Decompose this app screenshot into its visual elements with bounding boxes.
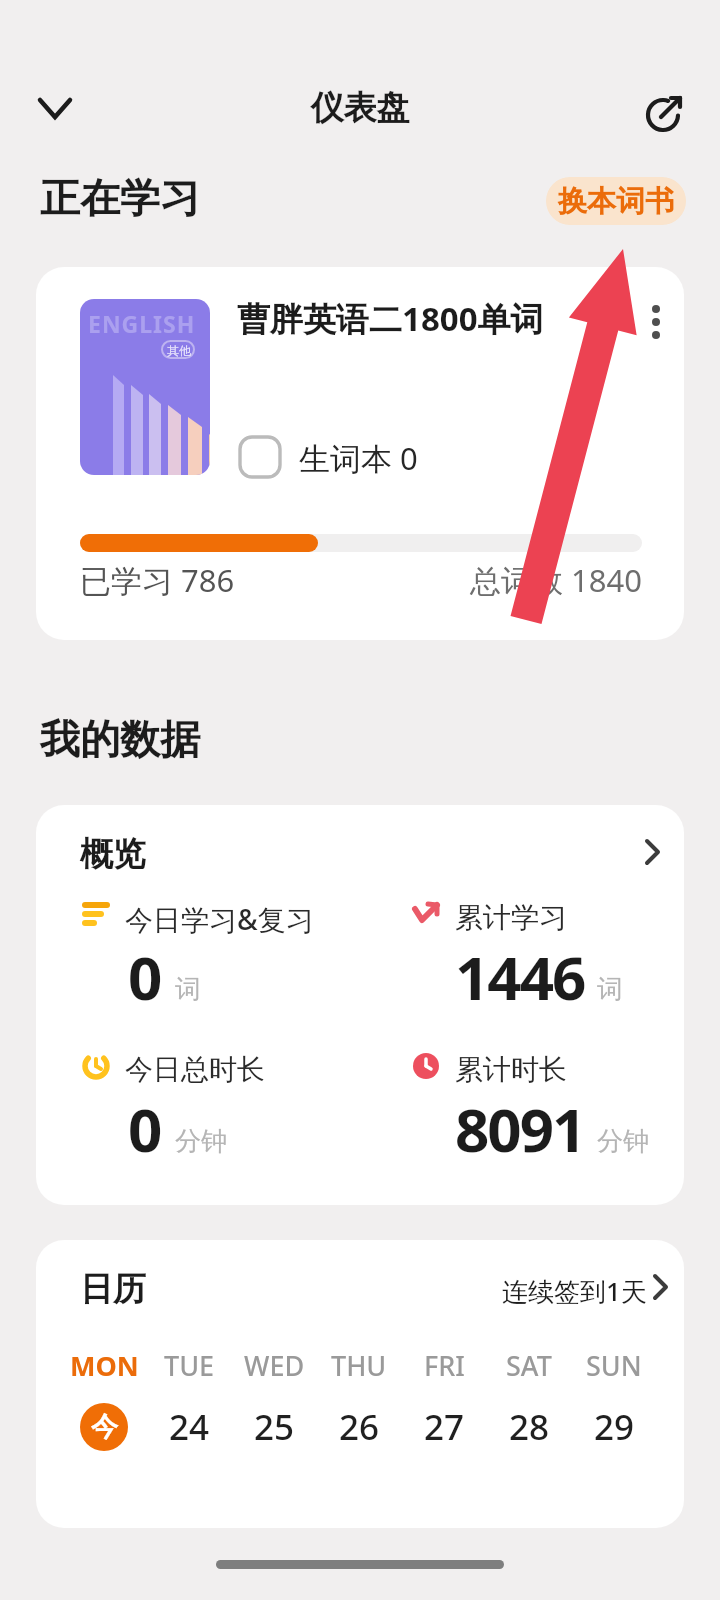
staticText: 正在学习 — [40, 173, 200, 223]
staticText: 词 — [175, 973, 201, 1006]
staticText: 累计学习 — [455, 900, 567, 935]
staticText: 仪表盘 — [0, 87, 720, 129]
staticText: 今 — [91, 1410, 118, 1444]
staticText: 日历 — [80, 1268, 146, 1310]
staticText: 概览 — [80, 833, 146, 875]
staticText: 连续签到1天 — [502, 1273, 647, 1309]
button[interactable]: 今 — [80, 1403, 128, 1451]
staticText: 0 — [128, 936, 163, 1018]
staticText: 27 — [424, 1403, 465, 1451]
staticText: 累计时长 — [455, 1052, 567, 1087]
staticText: SUN — [586, 1347, 642, 1384]
staticText: 28 — [509, 1403, 550, 1451]
staticText: 已学习 786 — [80, 559, 235, 601]
staticText: 分钟 — [175, 1125, 227, 1158]
staticText: 26 — [339, 1403, 380, 1451]
staticText: 其他 — [167, 343, 191, 358]
staticText: 我的数据 — [40, 714, 200, 764]
button[interactable]: 连续签到1天 — [480, 1262, 670, 1310]
staticText: ENGLISH — [88, 308, 196, 339]
staticText: 分钟 — [597, 1125, 649, 1158]
staticText: 29 — [594, 1403, 635, 1451]
button[interactable]: 换本词书 — [546, 177, 686, 225]
staticText: WED — [244, 1347, 305, 1384]
staticText: MON — [70, 1347, 139, 1384]
button[interactable] — [644, 303, 668, 343]
staticText: 8091 — [455, 1088, 585, 1170]
staticText: 总词数 1840 — [470, 559, 642, 601]
staticText: THU — [331, 1347, 387, 1384]
staticText: 25 — [254, 1403, 295, 1451]
staticText: 换本词书 — [558, 183, 674, 220]
staticText: FRI — [424, 1347, 465, 1384]
staticText: 生词本 0 — [299, 437, 418, 479]
staticText: 今日总时长 — [125, 1052, 265, 1087]
staticText: 今日学习&复习 — [125, 900, 314, 938]
button[interactable] — [30, 90, 80, 130]
button[interactable]: 生词本 0 — [239, 435, 439, 479]
button[interactable] — [642, 88, 686, 132]
button[interactable]: 概览 — [36, 805, 684, 883]
staticText: TUE — [164, 1347, 215, 1384]
staticText: 曹胖英语二1800单词 — [237, 296, 544, 341]
staticText: 0 — [128, 1088, 163, 1170]
staticText: SAT — [506, 1347, 552, 1384]
staticText: 24 — [169, 1403, 210, 1451]
staticText: 1446 — [455, 936, 585, 1018]
staticText: 词 — [597, 973, 623, 1006]
